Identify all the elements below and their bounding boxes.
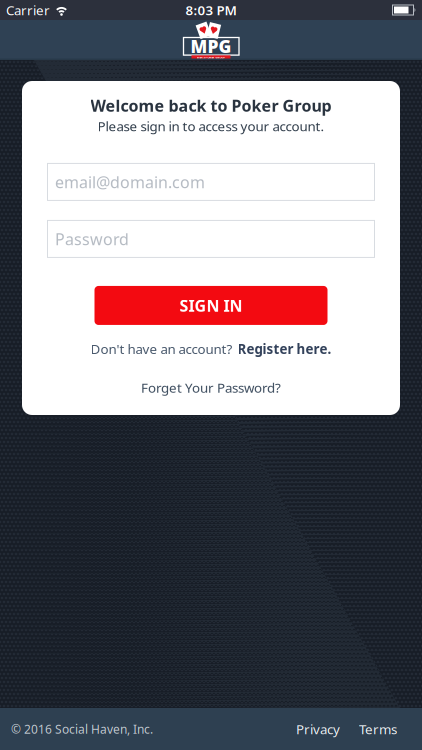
staticText: MEN'S POKER GROUP [196, 56, 225, 59]
staticText: MPG [190, 35, 231, 58]
button[interactable]: SIGN IN [94, 286, 327, 325]
button[interactable]: Forget Your Password? [141, 379, 281, 396]
staticText: Don't have an account? [90, 340, 232, 358]
staticText: Forget Your Password? [141, 379, 281, 396]
staticText: 8:03 PM [185, 1, 236, 19]
staticText: SIGN IN [179, 295, 242, 316]
staticText: Password [55, 228, 129, 249]
staticText: Carrier [6, 1, 50, 19]
button[interactable]: Privacy [296, 720, 340, 738]
staticText: Terms [359, 720, 397, 738]
button[interactable]: Password [47, 220, 375, 258]
staticText: © 2016 Social Haven, Inc. [11, 721, 153, 737]
staticText: Privacy [296, 720, 340, 738]
button[interactable]: Register here. [237, 340, 331, 358]
staticText: Please sign in to access your account. [97, 117, 324, 135]
staticText: email@domain.com [55, 171, 205, 192]
button[interactable]: email@domain.com [47, 163, 375, 201]
button[interactable]: Terms [359, 720, 397, 738]
staticText: Welcome back to Poker Group [90, 95, 331, 116]
staticText: Register here. [237, 340, 331, 358]
